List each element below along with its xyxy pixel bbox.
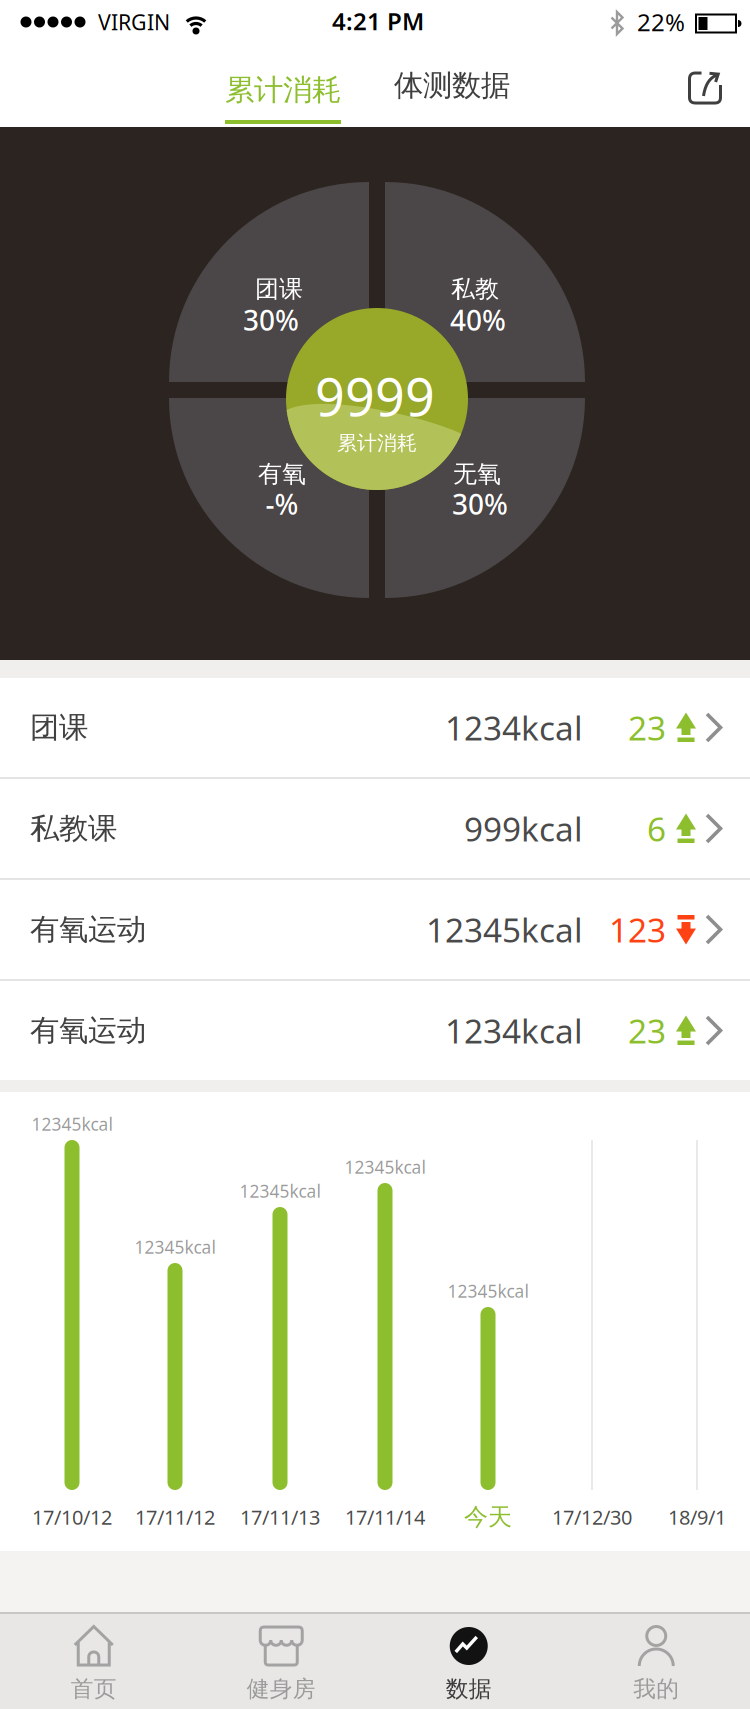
staticText: 18/9/1: [668, 1504, 726, 1530]
staticText: 17/12/30: [552, 1504, 632, 1530]
button[interactable]: [675, 58, 735, 118]
staticText: 12345kcal: [426, 907, 583, 952]
staticText: 6: [647, 806, 666, 851]
button[interactable]: 团课: [0, 678, 750, 777]
staticText: VIRGIN: [98, 8, 170, 36]
staticText: 4:21 PM: [332, 5, 424, 37]
staticText: 40%: [450, 301, 506, 339]
staticText: 有氧: [258, 459, 306, 489]
staticText: 17/11/14: [345, 1504, 425, 1530]
staticText: 数据: [446, 1675, 492, 1703]
button[interactable]: 累计消耗: [223, 44, 343, 127]
staticText: 体测数据: [394, 67, 510, 103]
staticText: 有氧运动: [30, 1012, 146, 1048]
staticText: 17/10/12: [32, 1504, 112, 1530]
staticText: 22%: [637, 6, 685, 38]
staticText: 1234kcal: [445, 1008, 583, 1053]
staticText: 团课: [255, 274, 303, 304]
button[interactable]: 私教课: [0, 779, 750, 878]
button[interactable]: 有氧运动: [0, 981, 750, 1080]
staticText: 12345kcal: [31, 1112, 112, 1135]
staticText: 12345kcal: [344, 1155, 425, 1178]
staticText: 17/11/12: [135, 1504, 215, 1530]
staticText: 我的: [633, 1675, 679, 1703]
staticText: 30%: [452, 485, 508, 523]
staticText: 有氧运动: [30, 911, 146, 947]
button[interactable]: 健身房: [187, 1612, 375, 1709]
staticText: 健身房: [247, 1675, 316, 1703]
staticText: 1234kcal: [445, 705, 583, 750]
staticText: 今天: [464, 1502, 512, 1532]
staticText: 私教课: [30, 810, 117, 846]
staticText: 30%: [243, 301, 299, 339]
staticText: 12345kcal: [447, 1279, 528, 1302]
staticText: 12345kcal: [239, 1179, 320, 1202]
staticText: 9999: [315, 361, 435, 431]
staticText: 17/11/13: [240, 1504, 320, 1530]
staticText: -%: [265, 485, 298, 523]
staticText: 累计消耗: [225, 72, 341, 108]
button[interactable]: 数据: [375, 1612, 562, 1709]
staticText: 23: [628, 705, 666, 750]
staticText: 私教: [451, 274, 499, 304]
staticText: 12345kcal: [134, 1235, 215, 1258]
staticText: 123: [609, 907, 666, 952]
staticText: 团课: [30, 709, 88, 745]
button[interactable]: 我的: [562, 1612, 750, 1709]
button[interactable]: 体测数据: [387, 44, 517, 127]
button[interactable]: 有氧运动: [0, 880, 750, 979]
staticText: 累计消耗: [337, 431, 417, 455]
staticText: 999kcal: [464, 806, 583, 851]
staticText: 23: [628, 1008, 666, 1053]
button[interactable]: 首页: [0, 1612, 187, 1709]
staticText: 无氧: [453, 459, 501, 489]
staticText: 首页: [71, 1675, 117, 1703]
